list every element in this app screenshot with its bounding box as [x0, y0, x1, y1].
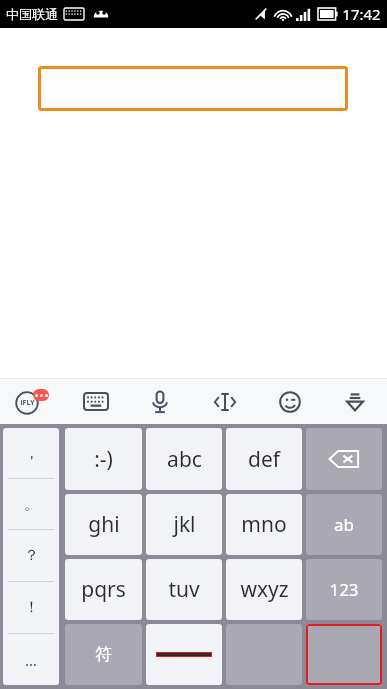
staticText: …: [25, 650, 37, 670]
button[interactable]: Voice input: [128, 379, 192, 424]
button[interactable]: Keyboard layout: [64, 379, 128, 424]
button[interactable]: def: [226, 428, 302, 490]
button[interactable]: 符: [65, 624, 142, 685]
staticText: def: [248, 445, 280, 474]
button[interactable]: :-): [65, 428, 142, 490]
staticText: ！: [24, 598, 39, 617]
staticText: 17:42: [342, 4, 381, 24]
staticText: iFLY: [20, 398, 35, 408]
button[interactable]: Emoji: [257, 379, 322, 424]
staticText: ab: [334, 513, 354, 536]
staticText: jkl: [173, 510, 196, 539]
staticText: wxyz: [240, 575, 289, 604]
button[interactable]: tuv: [146, 559, 222, 620]
button[interactable]: Backspace: [306, 428, 382, 490]
button[interactable]: ab: [306, 494, 382, 555]
staticText: mno: [241, 510, 287, 539]
staticText: ？: [24, 546, 39, 565]
button[interactable]: [38, 66, 348, 111]
button[interactable]: ！: [3, 582, 59, 633]
staticText: tuv: [168, 575, 200, 604]
button[interactable]: wxyz: [226, 559, 302, 620]
staticText: :-): [94, 445, 113, 474]
button[interactable]: jkl: [146, 494, 222, 555]
staticText: 中国联通: [6, 6, 58, 22]
button[interactable]: Hide keyboard: [322, 379, 387, 424]
button[interactable]: ghi: [65, 494, 142, 555]
staticText: ghi: [88, 510, 120, 539]
button[interactable]: pqrs: [65, 559, 142, 620]
button[interactable]: Enter: [306, 624, 382, 685]
button[interactable]: ，: [3, 428, 59, 478]
button[interactable]: …: [3, 634, 59, 685]
staticText: ，: [24, 444, 39, 463]
staticText: abc: [167, 445, 202, 474]
staticText: 123: [329, 578, 359, 601]
button[interactable]: ？: [3, 530, 59, 581]
button[interactable]: 。: [3, 479, 59, 529]
staticText: 符: [95, 644, 112, 665]
button[interactable]: abc: [146, 428, 222, 490]
button[interactable]: mno: [226, 494, 302, 555]
staticText: pqrs: [81, 575, 126, 604]
button[interactable]: Space: [146, 624, 222, 685]
staticText: 。: [24, 495, 39, 514]
button[interactable]: 123: [306, 559, 382, 620]
button[interactable]: Input method logo: [0, 379, 64, 424]
button[interactable]: Move cursor: [192, 379, 257, 424]
